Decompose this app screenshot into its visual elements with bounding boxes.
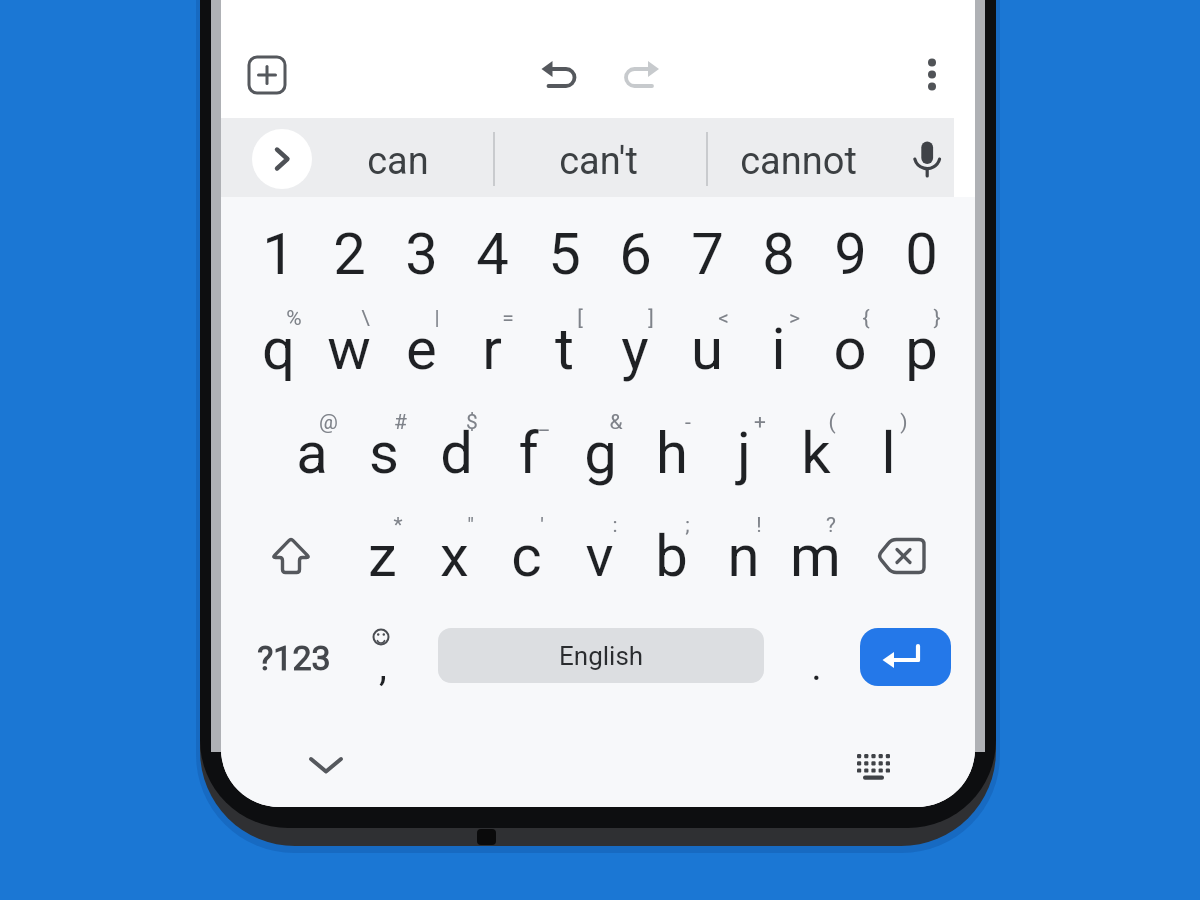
staticText: p: [905, 315, 938, 383]
staticText: can: [367, 139, 429, 184]
button[interactable]: [916, 55, 948, 95]
button[interactable]: r: [432, 299, 552, 399]
staticText: #: [394, 410, 407, 435]
button[interactable]: [254, 131, 310, 187]
staticText: y: [621, 315, 649, 383]
button[interactable]: k: [756, 403, 876, 503]
staticText: x: [440, 522, 469, 590]
staticText: !: [756, 513, 762, 538]
button[interactable]: d: [396, 403, 516, 503]
button[interactable]: [854, 746, 896, 786]
button[interactable]: 8: [718, 204, 838, 304]
staticText: .: [811, 643, 822, 690]
button[interactable]: 9: [790, 204, 910, 304]
button[interactable]: n: [683, 506, 803, 606]
staticText: 8: [762, 220, 795, 288]
button[interactable]: z: [322, 506, 442, 606]
button[interactable]: q: [221, 299, 338, 399]
button[interactable]: w: [289, 299, 409, 399]
staticText: 1: [262, 220, 295, 288]
button[interactable]: [539, 55, 577, 93]
button[interactable]: 6: [575, 204, 695, 304]
button[interactable]: b: [611, 506, 731, 606]
staticText: 9: [834, 220, 867, 288]
staticText: $: [466, 410, 478, 435]
staticText: r: [482, 315, 502, 383]
button[interactable]: [624, 55, 662, 93]
button[interactable]: s: [324, 403, 444, 503]
staticText: <: [718, 306, 729, 331]
staticText: e: [406, 315, 437, 383]
button[interactable]: j: [684, 403, 804, 503]
staticText: k: [801, 419, 831, 487]
staticText: ): [900, 410, 908, 435]
button[interactable]: a: [252, 403, 372, 503]
staticText: c: [511, 522, 542, 590]
staticText: n: [727, 522, 760, 590]
staticText: ;: [685, 513, 690, 538]
staticText: i: [771, 315, 786, 383]
staticText: q: [262, 315, 295, 383]
button[interactable]: l: [828, 403, 948, 503]
button[interactable]: c: [466, 506, 586, 606]
staticText: 2: [333, 220, 366, 288]
staticText: 6: [619, 220, 652, 288]
staticText: d: [440, 419, 473, 487]
button[interactable]: .: [756, 616, 876, 716]
button[interactable]: can: [338, 111, 458, 211]
staticText: m: [790, 522, 841, 590]
button[interactable]: x: [394, 506, 514, 606]
button[interactable]: [876, 532, 924, 576]
button[interactable]: i: [718, 299, 838, 399]
staticText: -: [685, 410, 691, 435]
staticText: *: [393, 513, 403, 538]
staticText: cannot: [740, 139, 857, 184]
staticText: z: [368, 522, 397, 590]
button[interactable]: 1: [221, 204, 338, 304]
staticText: l: [881, 419, 896, 487]
button[interactable]: o: [790, 299, 910, 399]
button[interactable]: [269, 530, 315, 576]
button[interactable]: t: [504, 299, 624, 399]
button[interactable]: h: [612, 403, 732, 503]
staticText: h: [656, 419, 688, 487]
button[interactable]: 7: [647, 204, 767, 304]
staticText: s: [369, 419, 399, 487]
staticText: 5: [548, 220, 581, 288]
button[interactable]: 0: [861, 204, 975, 304]
button[interactable]: m: [755, 506, 875, 606]
button[interactable]: 3: [361, 204, 481, 304]
staticText: 4: [476, 220, 509, 288]
staticText: +: [754, 410, 766, 435]
button[interactable]: u: [647, 299, 767, 399]
button[interactable]: [249, 57, 285, 93]
staticText: u: [691, 315, 723, 383]
staticText: [: [577, 306, 583, 331]
staticText: 0: [905, 220, 938, 288]
button[interactable]: [907, 135, 951, 183]
button[interactable]: ,: [323, 616, 443, 716]
staticText: >: [789, 306, 800, 331]
button[interactable]: [306, 745, 348, 785]
button[interactable]: 2: [289, 204, 409, 304]
button[interactable]: can't: [538, 111, 658, 211]
button[interactable]: [860, 628, 951, 686]
button[interactable]: y: [575, 299, 695, 399]
staticText: |: [434, 306, 440, 331]
button[interactable]: cannot: [738, 111, 858, 211]
button[interactable]: v: [539, 506, 659, 606]
button[interactable]: 4: [432, 204, 552, 304]
button[interactable]: p: [861, 299, 975, 399]
staticText: &: [609, 410, 623, 435]
button[interactable]: e: [361, 299, 481, 399]
button[interactable]: f: [468, 403, 588, 503]
button[interactable]: g: [540, 403, 660, 503]
staticText: f: [518, 419, 539, 487]
button[interactable]: 5: [504, 204, 624, 304]
staticText: @: [319, 410, 338, 435]
staticText: a: [296, 419, 328, 487]
button[interactable]: English: [438, 628, 764, 683]
staticText: _: [539, 410, 549, 435]
staticText: \: [361, 306, 370, 331]
button[interactable]: ?123: [234, 608, 354, 708]
